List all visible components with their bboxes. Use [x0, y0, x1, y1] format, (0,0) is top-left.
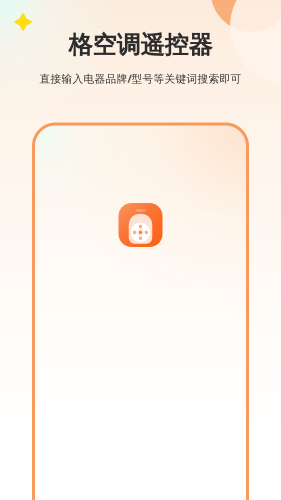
staticText: 直接输入电器品牌/型号等关键词搜索即可 — [39, 71, 241, 86]
button[interactable]: 格空调遥控器 — [118, 203, 162, 247]
staticText: 格空调遥控器 — [68, 30, 212, 60]
